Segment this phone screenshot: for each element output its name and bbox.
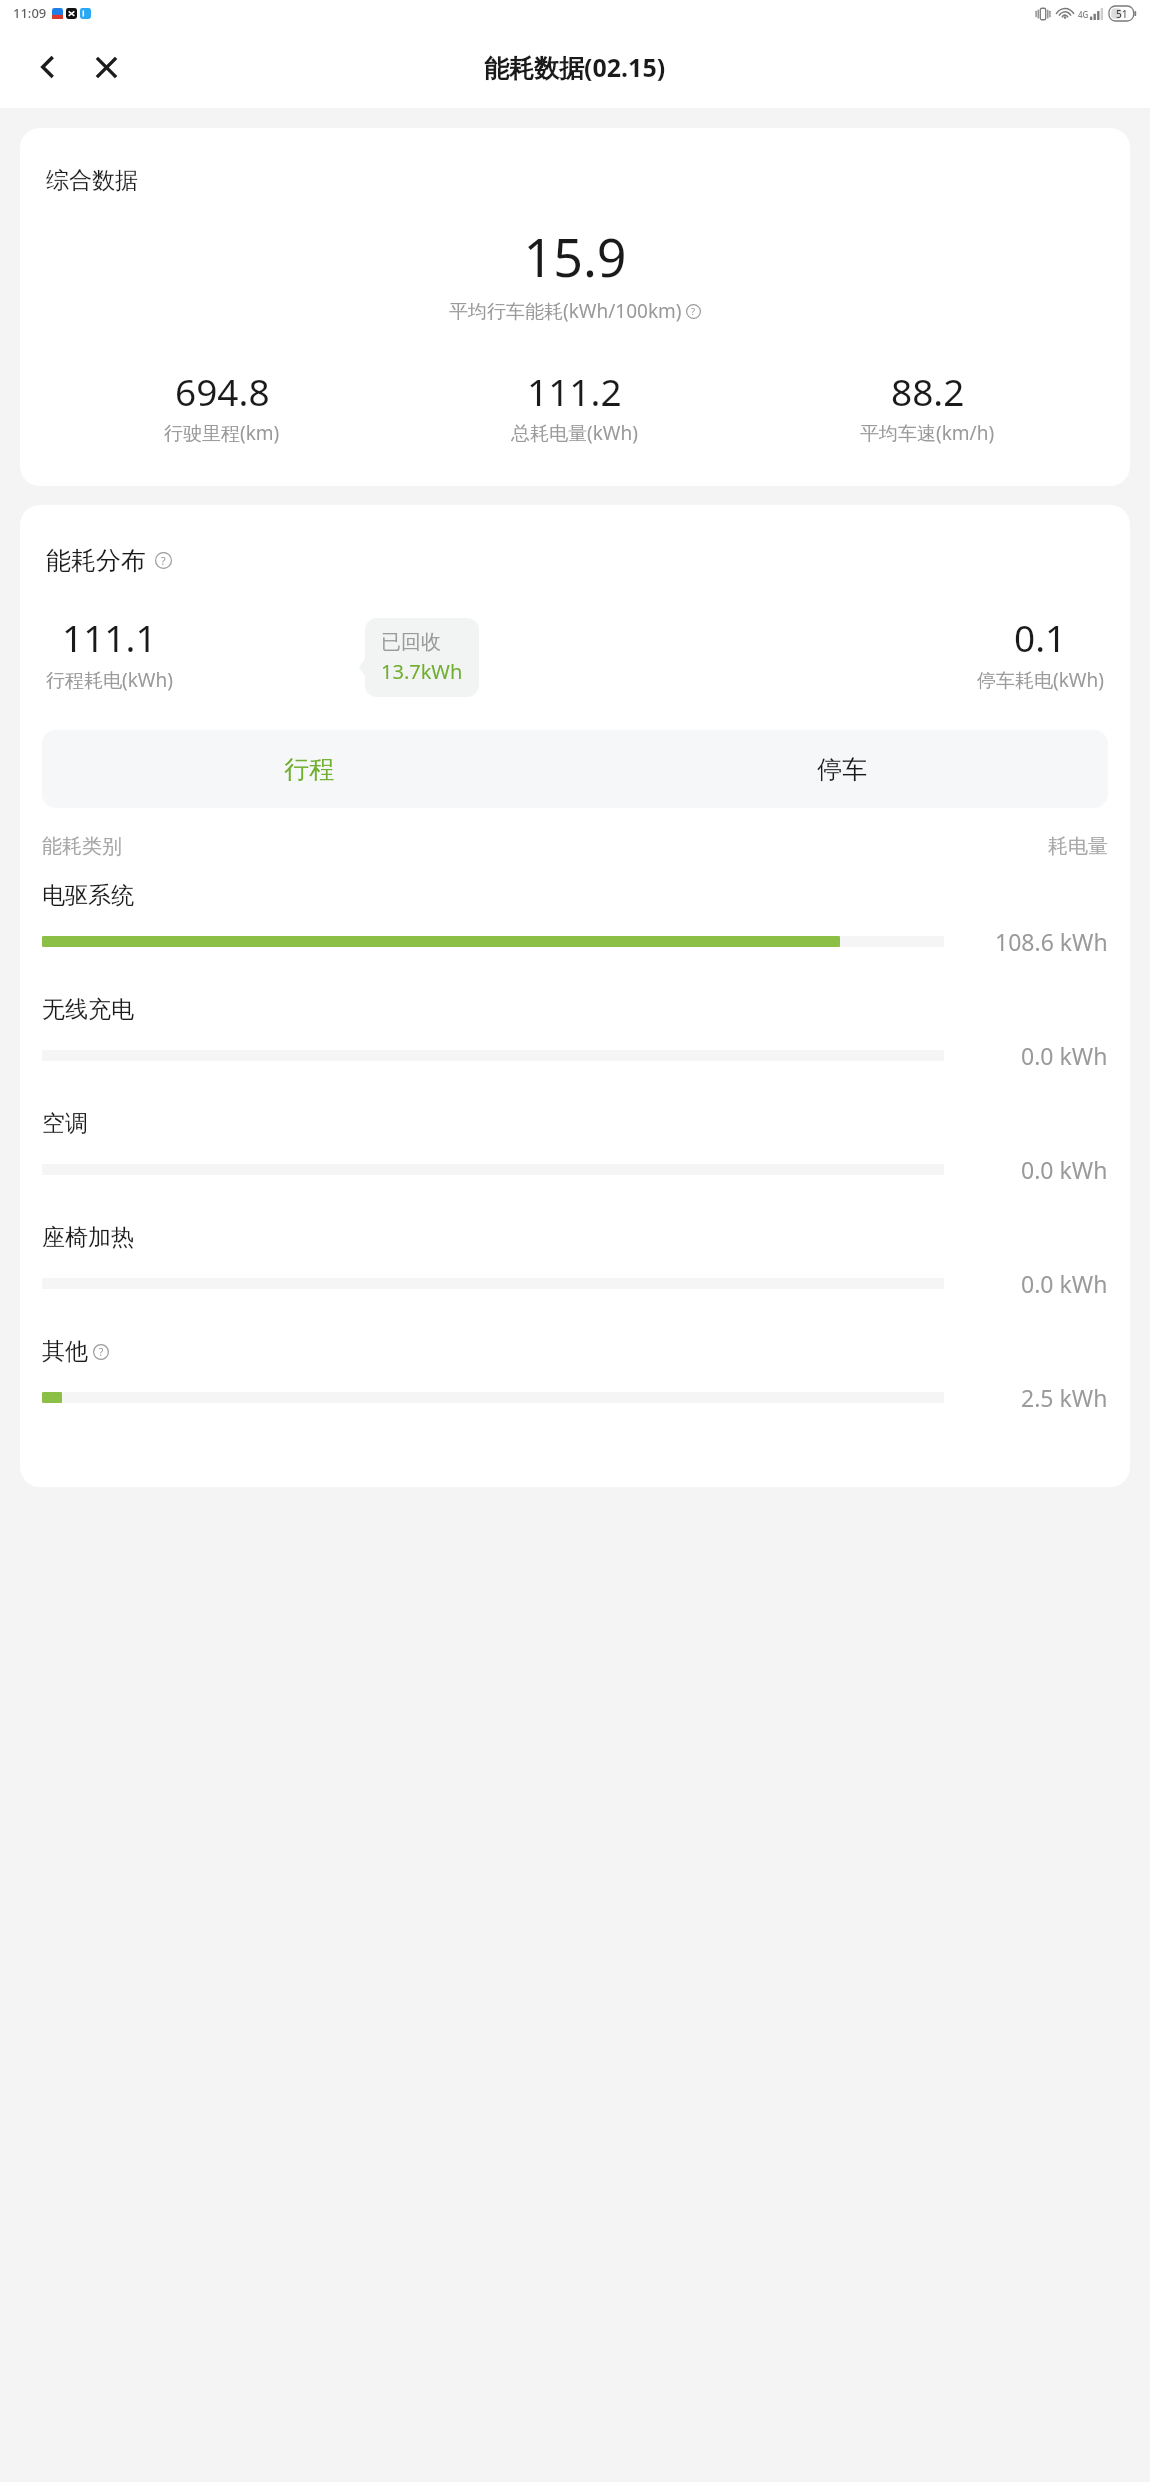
button[interactable]: Close [82,43,130,91]
button[interactable]: Back [24,43,72,91]
staticText: 4G [1078,9,1089,20]
staticText: 电驱系统 [42,881,134,910]
staticText: 停车 [817,754,867,785]
staticText: 平均行车能耗(kWh/100km) [449,298,682,324]
staticText: ? [691,305,696,318]
staticText: 694.8 [175,366,270,416]
staticText: 停车耗电(kWh) [977,667,1104,693]
staticText: 能耗分布 [46,545,146,576]
staticText: 行驶里程(km) [164,420,280,446]
staticText: 行程耗电(kWh) [46,667,173,693]
staticText: 座椅加热 [42,1223,134,1252]
staticText: ? [161,554,166,568]
staticText: 11:09 [13,4,47,22]
staticText: 88.2 [891,366,965,416]
staticText: 能耗数据(02.15) [484,50,666,84]
staticText: 行程 [284,754,334,785]
staticText: 综合数据 [46,166,138,195]
staticText: 能耗类别 [42,834,122,859]
staticText: 已回收 [381,630,441,655]
staticText: 51 [1116,7,1128,21]
staticText: 0.0 kWh [1021,1154,1108,1185]
staticText: 15.9 [46,221,1104,292]
staticText: 13.7kWh [381,658,463,685]
staticText: 108.6 kWh [995,926,1108,957]
staticText: 平均车速(km/h) [860,420,995,446]
staticText: 总耗电量(kWh) [511,420,638,446]
button[interactable]: 停车 [575,730,1108,808]
staticText: 0.0 kWh [1021,1268,1108,1299]
staticText: 空调 [42,1109,88,1138]
staticText: 111.1 [62,612,157,662]
staticText: ? [99,1345,104,1359]
button[interactable]: 行程 [42,730,575,808]
staticText: 2.5 kWh [1021,1382,1108,1413]
staticText: 111.2 [527,366,622,416]
staticText: 耗电量 [1048,834,1108,859]
staticText: 0.1 [1014,612,1067,662]
staticText: 其他 [42,1337,88,1366]
staticText: 0.0 kWh [1021,1040,1108,1071]
staticText: 无线充电 [42,995,134,1024]
